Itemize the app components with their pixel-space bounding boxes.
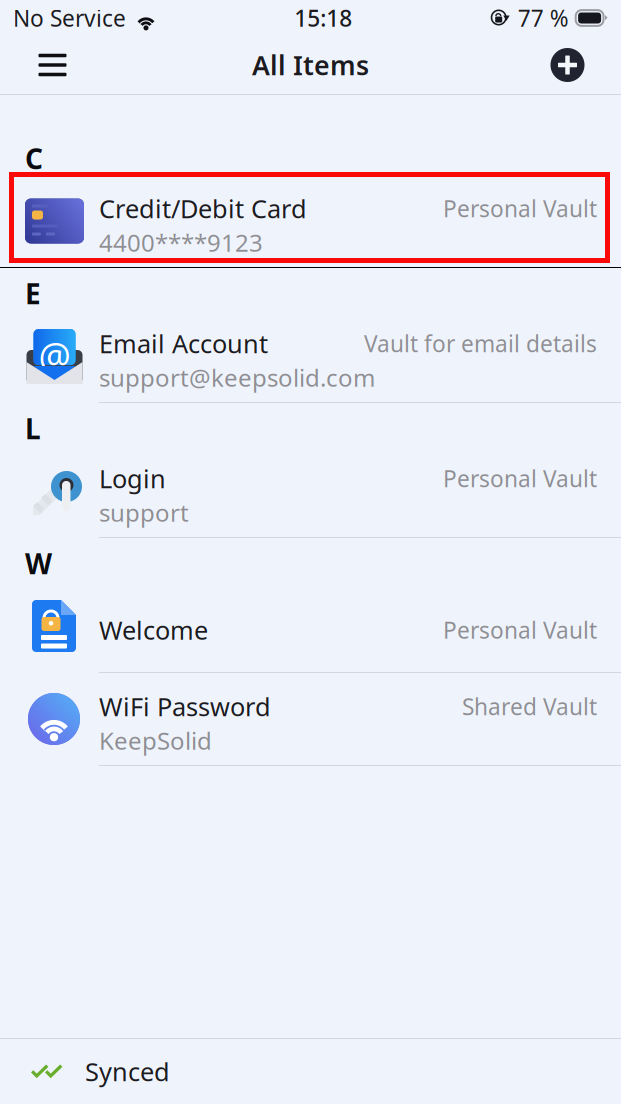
- staticText: E: [25, 275, 41, 312]
- staticText: Welcome: [99, 613, 208, 647]
- staticText: Personal Vault: [443, 615, 597, 645]
- button[interactable]: Add item: [541, 36, 594, 94]
- staticText: support: [99, 497, 189, 528]
- staticText: Login: [99, 462, 166, 495]
- staticText: L: [25, 410, 41, 447]
- button[interactable]: Menu: [26, 36, 79, 94]
- staticText: 4400****9123: [99, 227, 263, 258]
- staticText: @: [38, 331, 70, 379]
- staticText: Credit/Debit Card: [99, 192, 307, 225]
- staticText: C: [25, 140, 43, 177]
- staticText: support@keepsolid.com: [99, 362, 375, 393]
- button[interactable]: Welcome: [0, 580, 621, 673]
- staticText: 15:18: [294, 3, 352, 33]
- staticText: KeepSolid: [99, 725, 212, 756]
- staticText: Vault for email details: [364, 328, 597, 358]
- staticText: 77 %: [518, 3, 569, 33]
- staticText: All Items: [252, 47, 369, 83]
- staticText: WiFi Password: [99, 690, 271, 723]
- button[interactable]: Login: [0, 445, 621, 538]
- staticText: No Service: [13, 3, 126, 33]
- staticText: Shared Vault: [462, 691, 597, 721]
- staticText: Email Account: [99, 327, 268, 360]
- staticText: Synced: [85, 1055, 170, 1088]
- button[interactable]: @: [0, 310, 621, 403]
- button[interactable]: WiFi Password: [0, 673, 621, 766]
- staticText: Personal Vault: [443, 463, 597, 493]
- button[interactable]: Credit/Debit Card: [0, 175, 621, 268]
- staticText: Personal Vault: [443, 193, 597, 223]
- staticText: W: [25, 545, 52, 582]
